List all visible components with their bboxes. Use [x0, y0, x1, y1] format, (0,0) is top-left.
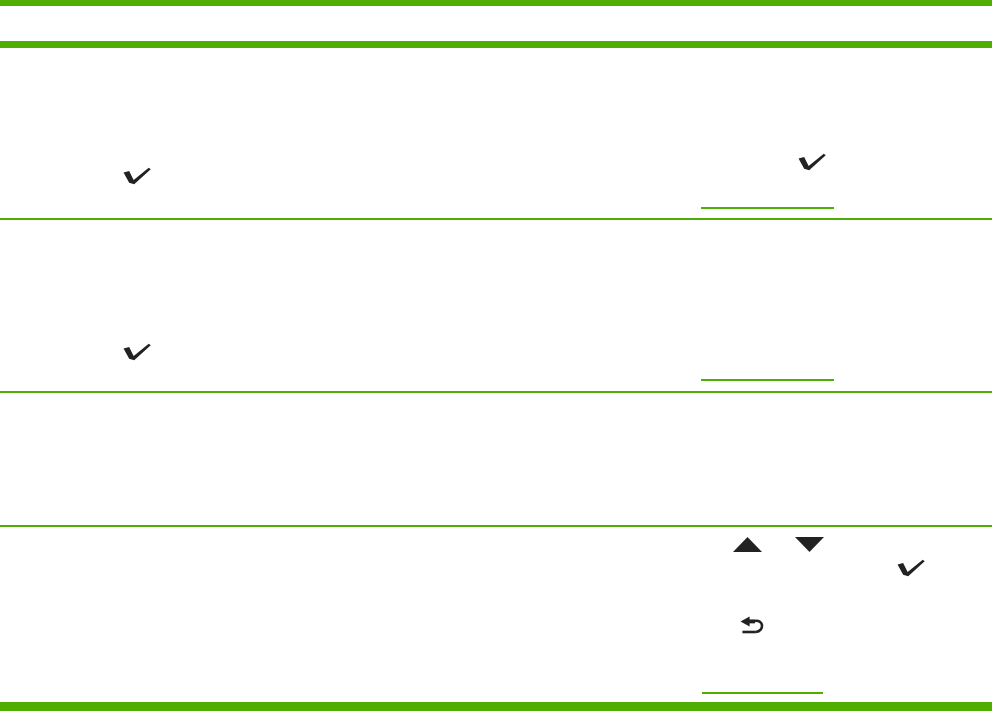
button[interactable]: Select [897, 559, 925, 577]
button[interactable]: Back [740, 616, 764, 636]
button[interactable]: Scroll down [795, 537, 824, 552]
button[interactable]: Select [123, 167, 151, 185]
button[interactable]: Select [123, 343, 151, 361]
button[interactable]: Select [798, 153, 826, 171]
button[interactable]: Scroll up [733, 537, 762, 552]
